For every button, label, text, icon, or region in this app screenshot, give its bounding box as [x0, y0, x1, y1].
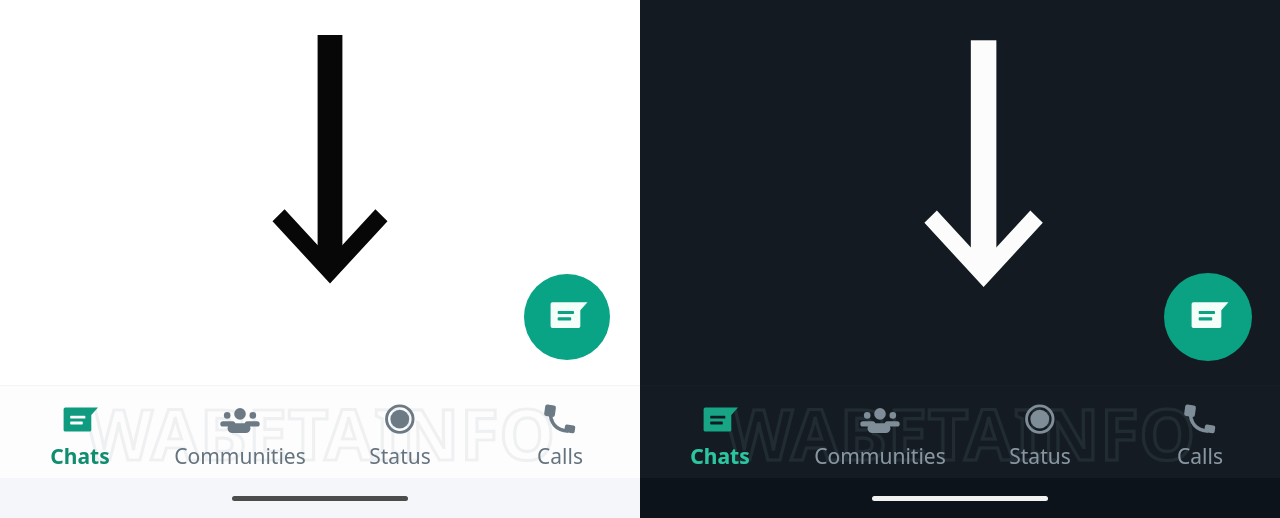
staticText: Communities — [174, 442, 306, 471]
button[interactable]: Communities — [800, 386, 960, 478]
staticText: Calls — [1177, 442, 1223, 471]
staticText: Status — [1009, 442, 1071, 471]
button[interactable]: New chat — [1164, 273, 1252, 361]
staticText: WABETAINFO — [725, 385, 1196, 477]
staticText: Status — [369, 442, 431, 471]
button[interactable]: Chats — [640, 386, 800, 478]
button[interactable]: New chat — [524, 274, 610, 360]
button[interactable]: Calls — [1120, 386, 1280, 478]
staticText: Chats — [50, 442, 110, 471]
staticText: Calls — [537, 442, 583, 471]
button[interactable]: Communities — [160, 386, 320, 478]
button[interactable]: Chats — [0, 386, 160, 478]
staticText: Communities — [814, 442, 946, 471]
staticText: Chats — [690, 442, 750, 471]
button[interactable]: Status — [960, 386, 1120, 478]
staticText: WABETAINFO — [85, 385, 556, 477]
button[interactable]: Status — [320, 386, 480, 478]
button[interactable]: Calls — [480, 386, 640, 478]
